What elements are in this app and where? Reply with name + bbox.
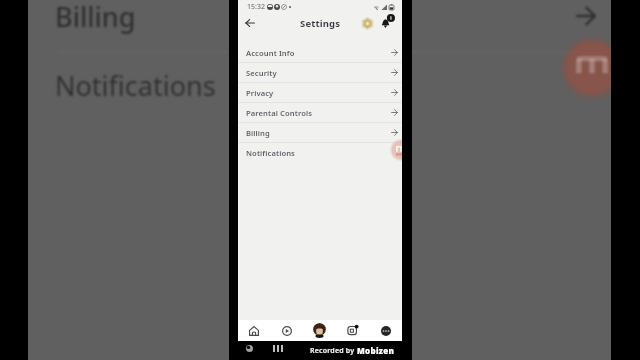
button[interactable]: Billing bbox=[238, 123, 402, 142]
staticText: Billing bbox=[246, 128, 270, 138]
button[interactable]: Privacy bbox=[238, 83, 402, 102]
button[interactable]: Back bbox=[241, 14, 259, 32]
staticText: Security bbox=[246, 68, 277, 78]
button[interactable]: Camera bbox=[336, 320, 369, 341]
staticText: 15:32 bbox=[247, 2, 265, 12]
staticText: Mobizen bbox=[357, 345, 395, 356]
button[interactable]: Home bbox=[238, 320, 270, 341]
staticText: Notifications bbox=[55, 67, 216, 104]
button[interactable]: More bbox=[369, 320, 402, 341]
staticText: Privacy bbox=[246, 88, 274, 98]
button[interactable]: Security bbox=[238, 63, 402, 82]
staticText: Parental Controls bbox=[246, 108, 313, 118]
button[interactable]: Videos bbox=[270, 320, 303, 341]
button[interactable]: Notifications bbox=[238, 143, 402, 162]
button[interactable]: Profile bbox=[303, 320, 336, 341]
button[interactable]: Recent apps bbox=[246, 345, 253, 352]
button[interactable]: Rewards bbox=[358, 14, 376, 32]
button[interactable]: Home bbox=[273, 345, 283, 352]
button[interactable]: Notifications bbox=[379, 13, 398, 32]
staticText: Billing bbox=[55, 0, 136, 35]
staticText: Settings bbox=[300, 17, 341, 30]
button[interactable]: Parental Controls bbox=[238, 103, 402, 122]
button[interactable]: Account Info bbox=[238, 43, 402, 62]
staticText: Recorded by bbox=[310, 346, 357, 356]
staticText: Notifications bbox=[246, 148, 295, 158]
staticText: Account Info bbox=[246, 48, 295, 58]
